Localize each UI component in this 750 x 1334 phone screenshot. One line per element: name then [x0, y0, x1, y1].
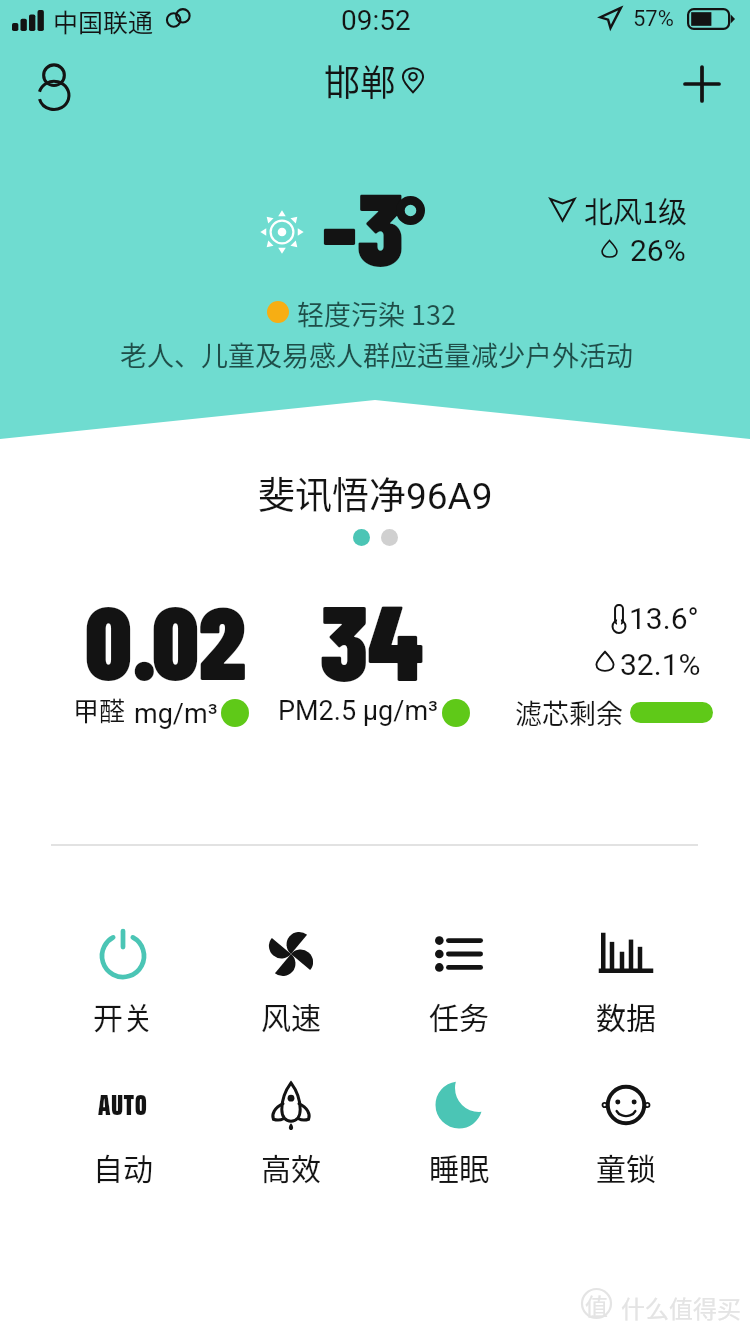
button[interactable]: 开关	[61, 920, 185, 1037]
staticText: 高效	[261, 1145, 321, 1188]
button[interactable]: 高效	[229, 1071, 353, 1188]
staticText: 童锁	[596, 1145, 656, 1188]
staticText: 32.1%	[620, 647, 701, 682]
button[interactable]: AUTO	[61, 1071, 185, 1188]
staticText: 96A9	[406, 475, 493, 518]
staticText: 任务	[429, 994, 489, 1037]
staticText: 老人、儿童及易感人群应适量减少户外活动	[120, 335, 633, 374]
staticText: 邯郸	[324, 54, 397, 106]
staticText: 值	[585, 1288, 608, 1319]
staticText: 0.02	[85, 578, 247, 700]
button[interactable]: 邯郸	[0, 54, 750, 106]
staticText: AUTO	[98, 1082, 148, 1128]
staticText: 睡眠	[429, 1145, 489, 1188]
button[interactable]: Profile	[28, 58, 80, 110]
staticText: 57%	[633, 6, 674, 32]
button[interactable]: 任务	[397, 920, 521, 1037]
staticText: 26%	[630, 233, 686, 268]
staticText: 北风1级	[584, 189, 688, 231]
staticText: 轻度污染 132	[297, 294, 457, 333]
button[interactable]: Add device	[676, 58, 728, 110]
staticText: 09:52	[341, 4, 411, 37]
staticText: 34	[320, 576, 424, 702]
staticText: 数据	[596, 994, 656, 1037]
staticText: 滤芯剩余	[515, 693, 623, 732]
staticText: PM2.5 μg/m³	[278, 695, 438, 727]
staticText: 甲醛	[73, 691, 126, 729]
staticText: 什么值得买	[621, 1290, 741, 1325]
staticText: 中国联通	[53, 3, 154, 39]
staticText: mg/m³	[134, 698, 218, 730]
staticText: 开关	[93, 994, 153, 1037]
staticText: -3	[322, 164, 404, 286]
button[interactable]: 数据	[564, 920, 688, 1037]
staticText: 13.6°	[629, 601, 699, 636]
staticText: 自动	[93, 1145, 153, 1188]
staticText: 风速	[261, 994, 321, 1037]
button[interactable]: 童锁	[564, 1071, 688, 1188]
button[interactable]: 睡眠	[397, 1071, 521, 1188]
button[interactable]: 风速	[229, 920, 353, 1037]
staticText: 斐讯悟净	[258, 466, 406, 520]
